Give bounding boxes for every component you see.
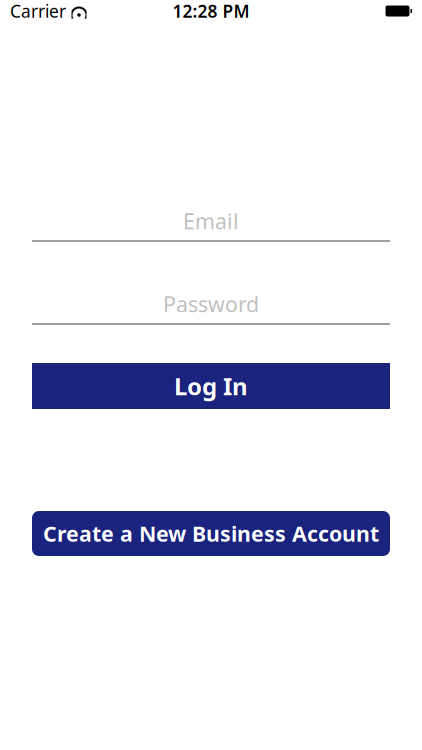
staticText: Carrier xyxy=(10,0,66,22)
staticText: Email xyxy=(183,207,239,235)
button[interactable]: Log In xyxy=(32,363,390,409)
staticText: 12:28 PM xyxy=(172,0,249,22)
button[interactable]: Create a New Business Account xyxy=(32,511,390,556)
staticText: Log In xyxy=(174,370,248,402)
staticText: Create a New Business Account xyxy=(43,519,379,548)
staticText: Password xyxy=(163,290,259,318)
